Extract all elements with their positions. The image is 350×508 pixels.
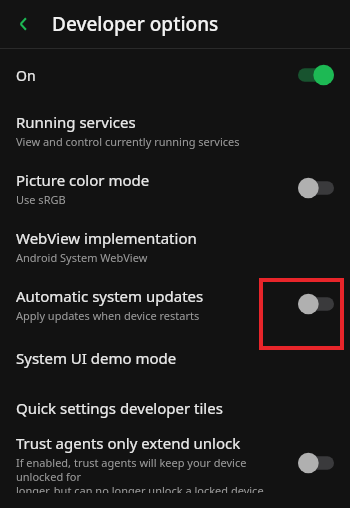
button[interactable]: Picture color mode xyxy=(0,159,350,217)
button[interactable]: On xyxy=(0,49,350,101)
staticText: Picture color mode xyxy=(16,170,150,190)
button[interactable]: Picture color mode toggle xyxy=(298,177,334,199)
button[interactable]: Quick settings developer tiles xyxy=(0,383,350,433)
staticText: View and control currently running servi… xyxy=(16,134,240,149)
button[interactable]: Automatic system updates toggle xyxy=(298,293,334,315)
staticText: System UI demo mode xyxy=(16,348,177,368)
button[interactable]: System UI demo mode xyxy=(0,333,350,383)
staticText: Running services xyxy=(16,112,136,132)
button[interactable]: Trust agents only extend unlock xyxy=(0,433,350,493)
staticText: Android System WebView xyxy=(16,250,148,265)
staticText: On xyxy=(16,66,36,85)
staticText: Quick settings developer tiles xyxy=(16,398,223,418)
staticText: Automatic system updates xyxy=(16,286,204,306)
button[interactable]: On toggle xyxy=(298,64,334,86)
button[interactable]: Running services xyxy=(0,101,350,159)
button[interactable]: Trust agents only extend unlock toggle xyxy=(298,452,334,474)
button[interactable]: Automatic system updates xyxy=(0,275,350,333)
staticText: WebView implementation xyxy=(16,228,197,248)
staticText: Developer options xyxy=(52,11,219,37)
button[interactable]: WebView implementation xyxy=(0,217,350,275)
button[interactable]: Back xyxy=(8,8,40,40)
staticText: Use sRGB xyxy=(16,192,66,207)
staticText: If enabled, trust agents will keep your … xyxy=(16,455,272,493)
staticText: Trust agents only extend unlock xyxy=(16,433,241,453)
staticText: Apply updates when device restarts xyxy=(16,308,200,323)
